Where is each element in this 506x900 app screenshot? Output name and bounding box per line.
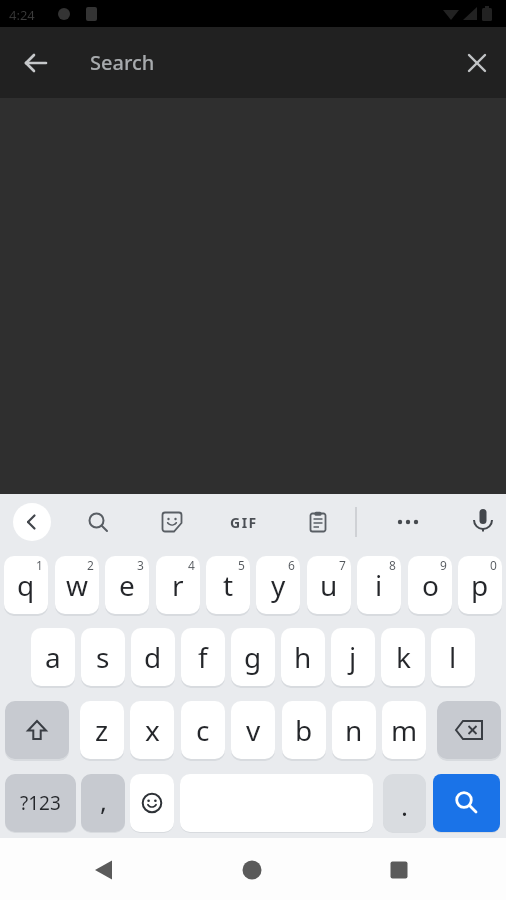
button[interactable]: . bbox=[383, 774, 426, 832]
button[interactable] bbox=[455, 41, 499, 85]
staticText: 0 bbox=[490, 557, 497, 573]
button[interactable]: r bbox=[156, 556, 200, 614]
button[interactable]: o bbox=[408, 556, 452, 614]
button[interactable]: e bbox=[105, 556, 149, 614]
staticText: GIF bbox=[230, 513, 258, 532]
staticText: . bbox=[401, 788, 408, 823]
button[interactable] bbox=[222, 839, 282, 899]
button[interactable]: u bbox=[307, 556, 351, 614]
button[interactable]: w bbox=[55, 556, 99, 614]
staticText: c bbox=[196, 711, 210, 749]
staticText: Search bbox=[90, 49, 155, 76]
staticText: 2 bbox=[87, 557, 94, 573]
button[interactable]: b bbox=[282, 701, 326, 759]
button[interactable]: y bbox=[256, 556, 300, 614]
button[interactable]: ?123 bbox=[5, 774, 76, 832]
button[interactable]: n bbox=[332, 701, 376, 759]
button[interactable]: i bbox=[357, 556, 401, 614]
staticText: b bbox=[295, 711, 313, 749]
staticText: k bbox=[396, 638, 411, 676]
staticText: h bbox=[294, 638, 312, 676]
staticText: e bbox=[119, 566, 135, 604]
staticText: 5 bbox=[238, 557, 245, 573]
staticText: z bbox=[95, 711, 109, 749]
staticText: 9 bbox=[440, 557, 447, 573]
staticText: d bbox=[144, 638, 162, 676]
button[interactable]: d bbox=[131, 628, 175, 686]
button[interactable] bbox=[298, 502, 338, 542]
button[interactable] bbox=[13, 503, 51, 541]
staticText: g bbox=[244, 638, 262, 676]
button[interactable]: GIF bbox=[224, 502, 264, 542]
staticText: 6 bbox=[288, 557, 295, 573]
staticText: x bbox=[145, 711, 160, 749]
staticText: 8 bbox=[389, 557, 396, 573]
button[interactable]: a bbox=[31, 628, 75, 686]
staticText: f bbox=[198, 638, 208, 676]
button[interactable]: z bbox=[80, 701, 124, 759]
staticText: 4:24 bbox=[9, 6, 35, 24]
button[interactable]: h bbox=[281, 628, 325, 686]
staticText: l bbox=[449, 638, 457, 676]
button[interactable]: j bbox=[331, 628, 375, 686]
button[interactable]: q bbox=[4, 556, 48, 614]
staticText: p bbox=[471, 566, 489, 604]
button[interactable] bbox=[433, 774, 500, 832]
staticText: m bbox=[391, 711, 418, 749]
button[interactable] bbox=[463, 500, 503, 540]
staticText: 1 bbox=[36, 557, 43, 573]
button[interactable]: x bbox=[130, 701, 174, 759]
button[interactable] bbox=[78, 502, 118, 542]
button[interactable] bbox=[73, 839, 133, 899]
button[interactable]: m bbox=[382, 701, 426, 759]
button[interactable]: s bbox=[81, 628, 125, 686]
staticText: 3 bbox=[137, 557, 144, 573]
staticText: 7 bbox=[339, 557, 346, 573]
staticText: j bbox=[349, 638, 357, 676]
staticText: i bbox=[375, 566, 383, 604]
button[interactable]: v bbox=[231, 701, 275, 759]
staticText: u bbox=[320, 566, 338, 604]
staticText: w bbox=[66, 566, 89, 604]
button[interactable]: g bbox=[231, 628, 275, 686]
staticText: 4 bbox=[188, 557, 195, 573]
button[interactable] bbox=[152, 502, 192, 542]
button[interactable] bbox=[369, 839, 429, 899]
button[interactable]: f bbox=[181, 628, 225, 686]
staticText: s bbox=[96, 638, 110, 676]
button[interactable]: t bbox=[206, 556, 250, 614]
button[interactable] bbox=[5, 701, 69, 759]
button[interactable] bbox=[14, 41, 58, 85]
staticText: , bbox=[100, 783, 107, 818]
staticText: q bbox=[17, 566, 35, 604]
button[interactable]: , bbox=[81, 774, 125, 832]
staticText: y bbox=[271, 566, 286, 604]
staticText: t bbox=[223, 566, 234, 604]
staticText: r bbox=[172, 566, 184, 604]
staticText: ?123 bbox=[20, 790, 61, 816]
button[interactable]: l bbox=[431, 628, 475, 686]
button[interactable] bbox=[130, 774, 174, 832]
button[interactable] bbox=[388, 502, 428, 542]
button[interactable]: c bbox=[181, 701, 225, 759]
staticText: n bbox=[345, 711, 363, 749]
staticText: v bbox=[246, 711, 261, 749]
staticText: a bbox=[45, 638, 61, 676]
button[interactable]: p bbox=[458, 556, 502, 614]
staticText: o bbox=[422, 566, 439, 604]
button[interactable]: k bbox=[381, 628, 425, 686]
button[interactable] bbox=[437, 701, 501, 759]
